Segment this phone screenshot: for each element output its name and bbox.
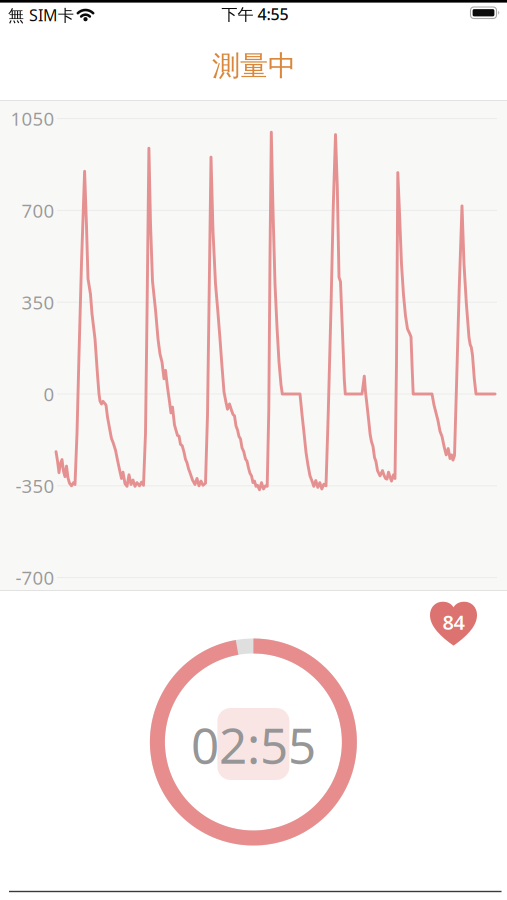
button[interactable]: 02:55 xyxy=(145,634,361,850)
staticText: 下午 4:55 xyxy=(221,3,288,25)
staticText: 84 xyxy=(442,609,464,635)
staticText: 1050 xyxy=(10,106,54,131)
staticText: 350 xyxy=(21,290,54,315)
staticText: -700 xyxy=(15,565,54,590)
staticText: -350 xyxy=(15,473,54,498)
staticText: 0 xyxy=(43,382,54,406)
staticText: 02:55 xyxy=(191,712,316,777)
staticText: 無 SIM卡 xyxy=(8,4,74,26)
staticText: 700 xyxy=(21,198,54,223)
staticText: 測量中 xyxy=(212,49,296,83)
